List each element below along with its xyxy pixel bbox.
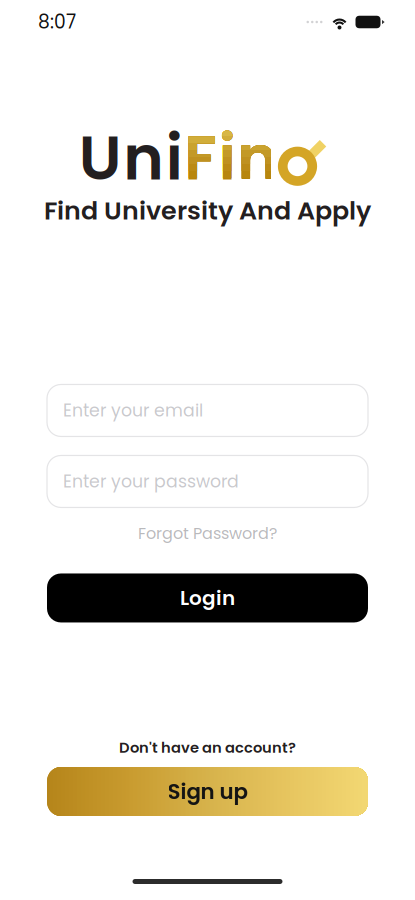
staticText: F bbox=[184, 115, 217, 201]
staticText: n bbox=[237, 115, 278, 201]
staticText: F bbox=[184, 115, 217, 201]
staticText: 8:07 bbox=[38, 9, 76, 35]
staticText: Login bbox=[180, 584, 235, 612]
staticText: i bbox=[166, 115, 183, 201]
staticText: i bbox=[219, 115, 236, 201]
staticText: Find University And Apply bbox=[44, 193, 371, 228]
staticText: i bbox=[219, 115, 236, 201]
button[interactable]: Sign up bbox=[47, 767, 368, 816]
staticText: F bbox=[184, 115, 217, 201]
staticText: n bbox=[237, 115, 278, 201]
staticText: F bbox=[184, 115, 217, 201]
staticText: i bbox=[219, 115, 236, 201]
staticText: F bbox=[184, 115, 217, 201]
staticText: F bbox=[184, 115, 217, 201]
staticText: Enter your email bbox=[63, 398, 203, 423]
staticText: Enter your password bbox=[63, 469, 239, 494]
staticText: n bbox=[237, 115, 278, 201]
staticText: n bbox=[237, 115, 278, 201]
staticText: i bbox=[219, 115, 236, 201]
staticText: Don't have an account? bbox=[119, 737, 296, 758]
staticText: n bbox=[237, 115, 278, 201]
staticText: i bbox=[219, 115, 236, 201]
staticText: F bbox=[184, 115, 217, 201]
staticText: i bbox=[219, 115, 236, 201]
staticText: U bbox=[79, 115, 122, 201]
staticText: n bbox=[123, 115, 164, 201]
staticText: i bbox=[219, 115, 236, 201]
staticText: F bbox=[184, 115, 217, 201]
staticText: F bbox=[184, 115, 217, 201]
button[interactable]: Login bbox=[47, 573, 368, 622]
staticText: Forgot Password? bbox=[138, 522, 277, 545]
staticText: F bbox=[184, 115, 217, 201]
staticText: i bbox=[219, 115, 236, 201]
staticText: n bbox=[237, 115, 278, 201]
staticText: n bbox=[237, 115, 278, 201]
staticText: Sign up bbox=[167, 777, 247, 806]
staticText: i bbox=[219, 115, 236, 201]
staticText: n bbox=[237, 115, 278, 201]
staticText: n bbox=[237, 115, 278, 201]
staticText: n bbox=[237, 115, 278, 201]
staticText: i bbox=[219, 115, 236, 201]
button[interactable]: Forgot Password? bbox=[47, 524, 368, 542]
